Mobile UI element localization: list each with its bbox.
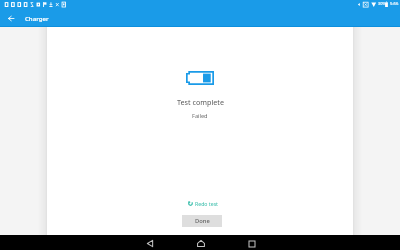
button[interactable]: Redo test <box>184 198 222 209</box>
staticText: Redo test <box>195 200 218 207</box>
button[interactable]: Done <box>182 215 222 227</box>
staticText: Test complete <box>177 97 224 107</box>
staticText: Charger <box>25 14 49 22</box>
staticText: Done <box>195 217 210 225</box>
staticText: 5:56 <box>390 1 399 7</box>
button[interactable]: Home <box>185 235 216 250</box>
button[interactable]: Recent apps <box>235 235 266 250</box>
button[interactable]: Back <box>134 235 165 250</box>
button[interactable]: Back <box>3 12 18 27</box>
staticText: 30% <box>378 1 386 6</box>
staticText: Failed <box>192 112 208 120</box>
